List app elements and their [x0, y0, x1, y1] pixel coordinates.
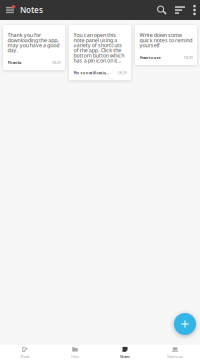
button[interactable]: Notes [100, 344, 150, 360]
staticText: You can open this note panel using a var… [73, 31, 124, 64]
staticText: Pin to notificatio… [73, 70, 108, 75]
button[interactable]: You can open this note panel using a var… [69, 25, 131, 80]
staticText: Shortcuts [167, 354, 183, 359]
button[interactable]: More options [189, 4, 200, 15]
button[interactable]: Thank you for downloading the app, may y… [3, 25, 65, 70]
staticText: How to use [139, 55, 160, 60]
staticText: Files [71, 354, 79, 359]
staticText: Book [20, 354, 29, 359]
staticText: Notes [120, 354, 130, 359]
button[interactable]: Search [152, 4, 171, 15]
button[interactable]: Sort [171, 4, 189, 15]
staticText: Thank you for downloading the app, may y… [7, 31, 59, 54]
staticText: Notes [20, 5, 43, 15]
staticText: Thanks [7, 60, 21, 65]
staticText: Write down some quick notes to remind yo… [139, 31, 192, 49]
staticText: 18:29 [183, 55, 192, 60]
button[interactable]: Book [0, 344, 50, 360]
button[interactable]: Files [50, 344, 100, 360]
staticText: 18:29 [51, 60, 60, 65]
button[interactable]: Write down some quick notes to remind yo… [135, 25, 197, 65]
button[interactable]: Menu [0, 2, 18, 18]
staticText: 18:29 [117, 70, 126, 75]
button[interactable]: New note [174, 313, 196, 335]
button[interactable]: Shortcuts [150, 344, 200, 360]
